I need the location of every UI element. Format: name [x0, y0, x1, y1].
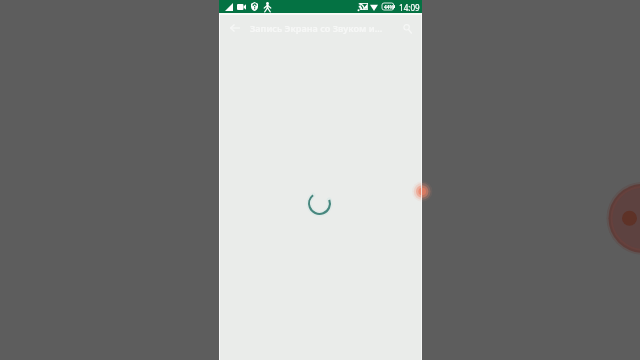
button[interactable]: Record	[410, 180, 432, 202]
staticText: Запись Экрана со Звуком и...	[250, 22, 383, 34]
staticText: 44%	[384, 4, 394, 11]
staticText: 14:09	[399, 2, 420, 13]
